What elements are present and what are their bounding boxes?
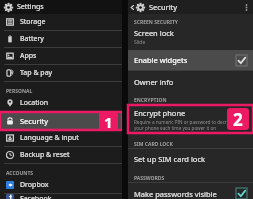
staticText: Battery xyxy=(20,34,44,44)
staticText: Dropbox xyxy=(20,180,49,190)
staticText: Set up SIM card lock xyxy=(134,154,206,164)
staticText: Storage xyxy=(20,17,46,27)
staticText: Encrypt phone xyxy=(134,108,186,118)
staticText: Slide xyxy=(134,39,146,46)
button[interactable]: Owner info xyxy=(128,77,253,87)
staticText: Require a numeric PIN or password to dec… xyxy=(134,119,234,125)
button[interactable]: Apps xyxy=(0,48,122,64)
button[interactable]: Settings xyxy=(0,0,122,14)
button[interactable]: Navigate up xyxy=(128,3,146,12)
staticText: Backup & reset xyxy=(20,150,70,160)
staticText: Security xyxy=(149,2,178,12)
button[interactable]: Set up SIM card lock xyxy=(128,154,253,164)
staticText: ACCOUNTS xyxy=(6,170,34,177)
button[interactable]: Security xyxy=(0,112,122,130)
staticText: SCREEN SECURITY xyxy=(134,19,178,26)
staticText: Screen lock xyxy=(134,28,174,38)
staticText: Owner info xyxy=(134,77,174,87)
button[interactable]: Location xyxy=(0,95,122,111)
staticText: 2 xyxy=(233,108,243,130)
staticText: Apps xyxy=(20,51,37,61)
button[interactable]: Storage xyxy=(0,14,122,30)
staticText: PASSWORDS xyxy=(134,175,165,182)
button[interactable]: Make passwords visible xyxy=(128,188,253,199)
staticText: ENCRYPTION xyxy=(134,97,167,104)
staticText: PERSONAL xyxy=(6,88,33,95)
staticText: SIM CARD LOCK xyxy=(134,141,173,148)
staticText: Location xyxy=(20,98,49,108)
staticText: Facebook xyxy=(20,194,52,199)
button[interactable]: Encrypt phone xyxy=(128,105,253,133)
button[interactable]: Screen lock xyxy=(128,26,253,46)
button[interactable]: More options xyxy=(239,0,253,14)
staticText: Language & input xyxy=(20,133,79,143)
staticText: your phone each time you power it on xyxy=(134,125,217,131)
button[interactable]: Battery xyxy=(0,31,122,47)
button[interactable]: Enable widgets xyxy=(128,50,253,70)
button[interactable]: Tap & pay xyxy=(0,65,122,81)
button[interactable]: Dropbox xyxy=(0,177,122,193)
staticText: 1 xyxy=(104,112,113,130)
button[interactable]: Facebook xyxy=(0,194,122,199)
staticText: Tap & pay xyxy=(20,68,53,78)
staticText: Security xyxy=(20,116,49,126)
button[interactable]: Backup & reset xyxy=(0,147,122,163)
staticText: Make passwords visible xyxy=(134,189,217,199)
button[interactable]: Language & input xyxy=(0,130,122,146)
staticText: Enable widgets xyxy=(134,55,188,65)
staticText: Settings xyxy=(17,2,44,12)
